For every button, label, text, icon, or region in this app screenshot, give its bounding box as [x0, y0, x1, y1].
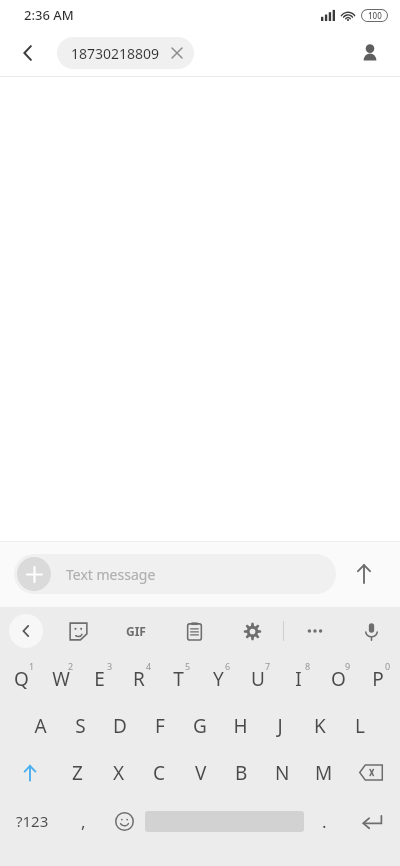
button[interactable]: M — [303, 749, 344, 796]
button[interactable]: Send — [342, 552, 386, 596]
button[interactable]: H — [220, 702, 260, 749]
staticText: D — [113, 713, 127, 739]
staticText: , — [81, 810, 86, 833]
staticText: 0 — [385, 660, 391, 672]
staticText: P — [372, 666, 384, 692]
staticText: Z — [72, 760, 83, 786]
button[interactable]: Stickers — [61, 614, 95, 648]
button[interactable]: T — [158, 655, 198, 702]
staticText: N — [275, 760, 290, 786]
button[interactable]: Y — [198, 655, 238, 702]
button[interactable]: U — [238, 655, 278, 702]
staticText: X — [113, 760, 125, 786]
staticText: G — [193, 713, 207, 739]
button[interactable]: R — [119, 655, 158, 702]
button[interactable]: Shift — [2, 749, 57, 796]
staticText: R — [133, 666, 145, 692]
staticText: 7 — [265, 660, 271, 672]
button[interactable]: S — [60, 702, 100, 749]
staticText: W — [52, 666, 70, 692]
button[interactable]: E — [80, 655, 119, 702]
button[interactable]: D — [100, 702, 140, 749]
staticText: ?123 — [16, 811, 49, 831]
button[interactable]: Backspace — [344, 749, 398, 796]
button[interactable]: I — [278, 655, 318, 702]
staticText: GIF — [126, 623, 146, 639]
button[interactable]: Emoji — [104, 796, 145, 846]
staticText: V — [195, 760, 207, 786]
staticText: 8 — [305, 660, 311, 672]
staticText: 4 — [146, 660, 152, 672]
button[interactable]: W — [41, 655, 80, 702]
button[interactable]: Add attachment — [17, 557, 51, 591]
button[interactable]: A — [20, 702, 60, 749]
staticText: O — [331, 666, 346, 692]
staticText: Text message — [66, 565, 156, 584]
staticText: 2:36 AM — [24, 6, 74, 24]
staticText: 18730218809 — [71, 44, 160, 63]
button[interactable]: L — [340, 702, 380, 749]
button[interactable]: Z — [57, 749, 98, 796]
button[interactable]: P — [358, 655, 398, 702]
staticText: 100 — [368, 10, 382, 21]
staticText: K — [314, 713, 326, 739]
staticText: J — [277, 713, 283, 739]
button[interactable]: Q — [2, 655, 41, 702]
button[interactable]: ?123 — [2, 796, 63, 846]
staticText: 1 — [29, 660, 35, 672]
button[interactable]: Expand toolbar — [9, 614, 43, 648]
button[interactable]: B — [221, 749, 262, 796]
staticText: M — [315, 760, 333, 786]
staticText: S — [75, 713, 86, 739]
button[interactable]: G — [180, 702, 220, 749]
button[interactable]: Contacts — [350, 33, 390, 73]
button[interactable]: Remove recipient — [168, 44, 186, 62]
staticText: U — [251, 666, 265, 692]
button[interactable]: X — [98, 749, 139, 796]
button[interactable]: K — [300, 702, 340, 749]
staticText: Q — [14, 666, 29, 692]
staticText: C — [153, 760, 166, 786]
button[interactable]: V — [180, 749, 221, 796]
staticText: I — [295, 666, 302, 692]
staticText: T — [173, 666, 184, 692]
staticText: 5 — [185, 660, 191, 672]
staticText: E — [94, 666, 105, 692]
button[interactable]: More options — [298, 614, 332, 648]
button[interactable]: GIF — [119, 614, 153, 648]
button[interactable]: . — [304, 796, 345, 846]
button[interactable]: Enter — [345, 796, 398, 846]
button[interactable]: O — [318, 655, 358, 702]
button[interactable]: N — [262, 749, 303, 796]
button[interactable]: Voice input — [354, 614, 388, 648]
staticText: B — [235, 760, 248, 786]
button[interactable]: Settings — [235, 614, 269, 648]
staticText: 6 — [225, 660, 231, 672]
staticText: H — [233, 713, 248, 739]
button[interactable]: , — [63, 796, 104, 846]
button[interactable]: Clipboard — [177, 614, 211, 648]
staticText: Y — [213, 666, 224, 692]
staticText: 2 — [68, 660, 74, 672]
button[interactable]: Back — [8, 33, 48, 73]
staticText: F — [155, 713, 165, 739]
button[interactable]: C — [139, 749, 180, 796]
staticText: 3 — [107, 660, 113, 672]
staticText: 9 — [345, 660, 351, 672]
button[interactable]: 18730218809 — [57, 37, 194, 69]
button[interactable]: J — [260, 702, 300, 749]
staticText: A — [34, 713, 47, 739]
staticText: . — [322, 810, 327, 833]
button[interactable]: Add attachment — [14, 554, 336, 594]
staticText: L — [355, 713, 365, 739]
button[interactable]: F — [140, 702, 180, 749]
